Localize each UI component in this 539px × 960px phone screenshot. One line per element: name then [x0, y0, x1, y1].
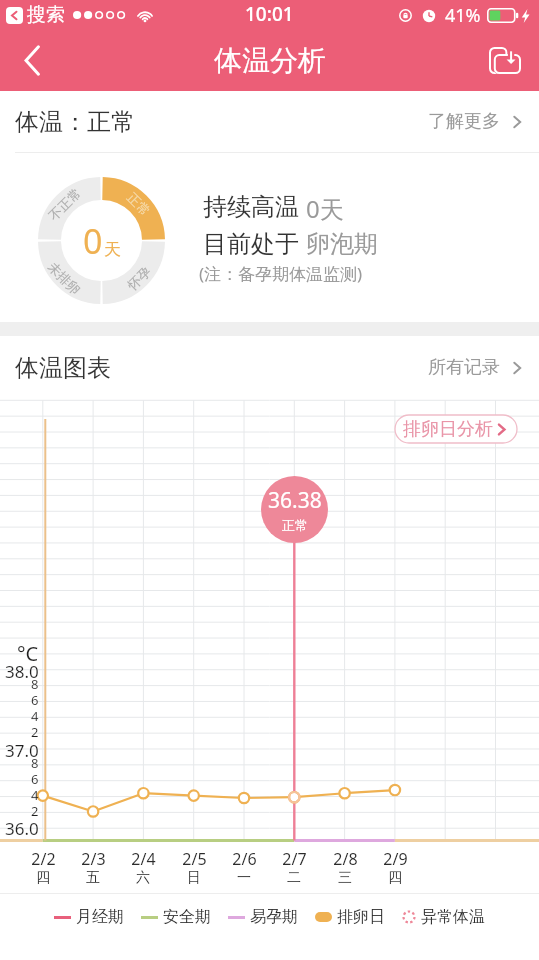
staticText: 41% [445, 3, 481, 28]
staticText: 体温分析 [214, 43, 326, 78]
staticText: 正常 [124, 189, 154, 219]
staticText: 4 [31, 707, 39, 725]
staticText: 6 [31, 691, 39, 709]
button[interactable]: 体温： [0, 91, 539, 152]
staticText: 了解更多 [428, 110, 500, 133]
staticText: 2 [31, 802, 39, 820]
staticText: 四 [36, 869, 50, 887]
staticText: 持续高温 [203, 192, 299, 222]
staticText: 二 [287, 869, 301, 887]
staticText: 目前处于 [203, 229, 299, 259]
staticText: 2/7 [282, 848, 307, 870]
staticText: 不正常 [45, 185, 84, 223]
staticText: 2/4 [131, 848, 156, 870]
staticText: (注：备孕期体温监测) [199, 262, 363, 285]
staticText: 排卵日分析 [403, 418, 493, 441]
staticText: 日 [187, 869, 201, 887]
staticText: 天 [104, 239, 121, 260]
staticText: 2 [31, 723, 39, 741]
staticText: 2/9 [383, 848, 408, 870]
staticText: 卵泡期 [306, 229, 378, 259]
staticText: 6 [31, 770, 39, 788]
button[interactable]: Back [0, 30, 64, 91]
staticText: 月经期 [76, 907, 124, 927]
staticText: 2/5 [182, 848, 207, 870]
staticText: 五 [86, 869, 100, 887]
staticText: 四 [388, 869, 402, 887]
staticText: 排卵日 [337, 907, 385, 927]
staticText: 安全期 [163, 907, 211, 927]
staticText: 4 [31, 786, 39, 804]
staticText: 36.38 [268, 486, 322, 515]
button[interactable]: 排卵日分析 [395, 415, 517, 443]
staticText: 体温图表 [15, 353, 111, 383]
staticText: 异常体温 [421, 907, 485, 927]
staticText: 三 [338, 869, 352, 887]
staticText: 0 [83, 218, 103, 264]
staticText: 六 [136, 869, 150, 887]
staticText: 体温： [15, 107, 87, 137]
button[interactable]: Save [470, 30, 539, 91]
staticText: 搜索 [27, 3, 65, 27]
staticText: 2/6 [232, 848, 257, 870]
staticText: 一 [237, 869, 251, 887]
staticText: 10:01 [245, 1, 294, 27]
staticText: 未排卵 [45, 259, 84, 297]
staticText: 8 [31, 754, 39, 772]
staticText: 怀孕 [124, 263, 154, 293]
staticText: 0天 [306, 192, 344, 225]
staticText: 36.0 [5, 817, 39, 840]
staticText: 2/3 [81, 848, 106, 870]
staticText: 正常 [87, 107, 135, 137]
staticText: 8 [31, 675, 39, 693]
staticText: 所有记录 [428, 356, 500, 379]
staticText: 正常 [282, 517, 308, 533]
staticText: 易孕期 [250, 907, 298, 927]
staticText: 2/2 [31, 848, 56, 870]
button[interactable]: 体温图表 [0, 336, 539, 399]
staticText: °C [17, 640, 39, 667]
staticText: 37.0 [5, 739, 39, 762]
staticText: 38.0 [5, 660, 39, 683]
staticText: 2/8 [333, 848, 358, 870]
